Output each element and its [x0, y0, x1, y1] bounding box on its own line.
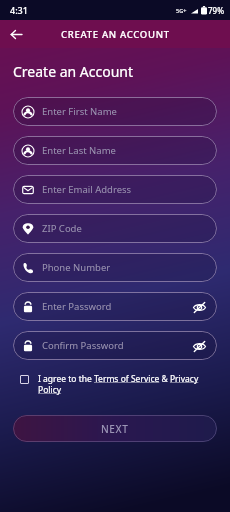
staticText: 79% [208, 5, 224, 16]
staticText: NEXT [101, 422, 129, 436]
button[interactable]: Show password [190, 337, 208, 355]
staticText: 5G+ [176, 7, 187, 14]
button[interactable]: Confirm Password [13, 331, 217, 360]
button[interactable]: Enter Email Address [13, 175, 217, 204]
button[interactable]: Enter First Name [13, 97, 217, 126]
button[interactable]: NEXT [13, 415, 217, 442]
staticText: Phone Number [42, 261, 111, 274]
staticText: Confirm Password [42, 339, 124, 352]
staticText: Enter Last Name [42, 144, 116, 157]
button[interactable]: I agree to the Terms of Service & Privac… [13, 373, 217, 395]
staticText: Enter Password [42, 300, 112, 313]
button[interactable]: ZIP Code [13, 214, 217, 243]
button[interactable]: Back [5, 23, 27, 45]
staticText: Enter Email Address [42, 183, 132, 196]
staticText: Create an Account [13, 62, 134, 81]
button[interactable]: Show password [190, 298, 208, 316]
button[interactable]: Enter Last Name [13, 136, 217, 165]
staticText: I agree to the Terms of Service & Privac… [38, 373, 217, 395]
staticText: ZIP Code [42, 222, 82, 235]
button[interactable]: Enter Password [13, 292, 217, 321]
staticText: Enter First Name [42, 105, 117, 118]
staticText: 4:31 [10, 4, 28, 16]
button[interactable]: Phone Number [13, 253, 217, 282]
staticText: CREATE AN ACCOUNT [61, 28, 170, 41]
